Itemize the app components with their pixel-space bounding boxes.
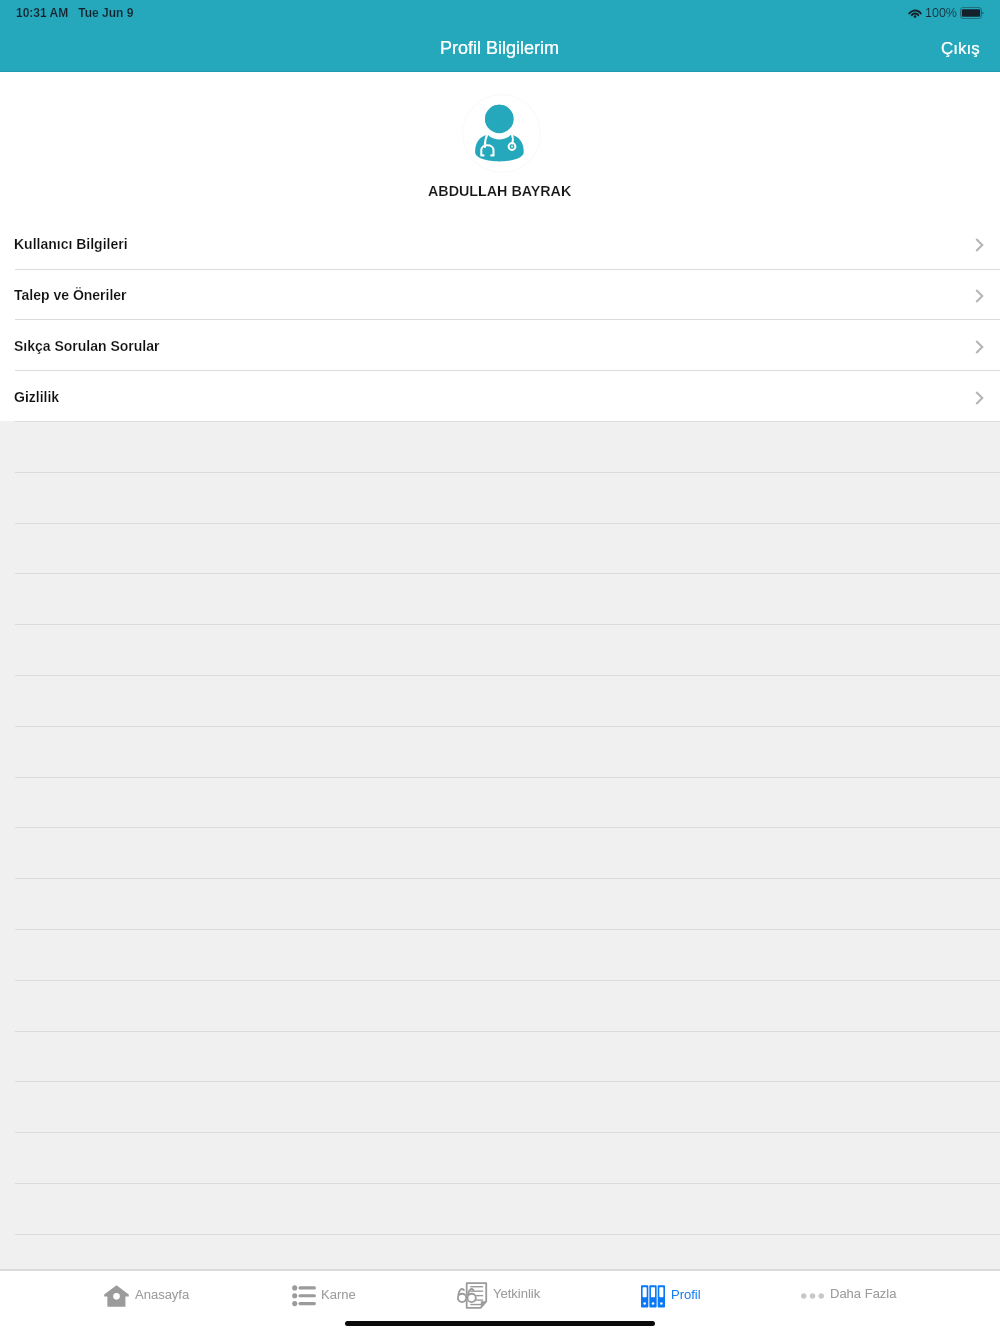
staticText: 10:31 AM Tue Jun 9 [16,6,134,19]
button[interactable]: Kullanıcı Bilgileri [0,219,1000,270]
staticText: Kullanıcı Bilgileri [14,236,128,252]
staticText: ABDULLAH BAYRAK [428,183,572,199]
staticText: 100% [925,6,957,20]
other: Daha Fazla [801,1291,824,1301]
staticText: Profil Bilgilerim [440,38,560,58]
staticText: Gizlilik [14,389,60,405]
staticText: Anasayfa [135,1287,190,1302]
button[interactable]: Karne [236,1272,412,1315]
button[interactable]: Anasayfa [59,1272,235,1315]
button[interactable]: Yetkinlik [410,1272,586,1315]
button[interactable]: Profil [583,1272,759,1315]
staticText: Çıkış [941,39,980,58]
other: Yetkinlik [456,1282,487,1309]
staticText: Profil [671,1287,701,1302]
button[interactable]: Talep ve Öneriler [0,270,1000,321]
staticText: Talep ve Öneriler [14,287,127,303]
button[interactable]: Çıkış [921,27,1000,70]
staticText: Yetkinlik [493,1286,541,1301]
button[interactable]: Sıkça Sorulan Sorular [0,321,1000,372]
staticText: Karne [321,1287,356,1302]
staticText: Daha Fazla [830,1286,897,1301]
button[interactable]: Daha Fazla [761,1272,937,1315]
other: Anasayfa [104,1285,129,1307]
button[interactable]: Gizlilik [0,372,1000,423]
other: Profil [641,1285,665,1307]
staticText: Sıkça Sorulan Sorular [14,338,160,354]
other: Karne [292,1286,315,1306]
